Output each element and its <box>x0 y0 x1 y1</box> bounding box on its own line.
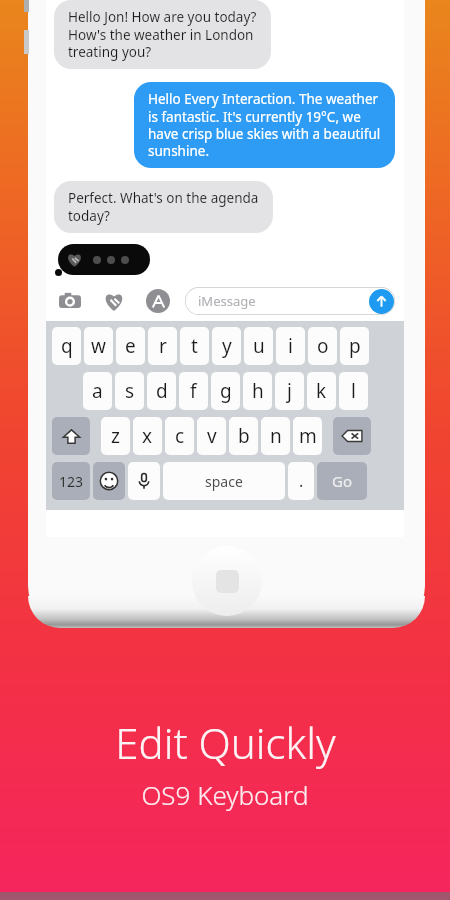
staticText: a <box>92 378 103 404</box>
button[interactable]: j <box>275 372 304 410</box>
button[interactable]: q <box>52 327 81 365</box>
button[interactable]: c <box>165 417 194 455</box>
staticText: p <box>349 333 361 359</box>
staticText: OS9 Keyboard <box>141 777 309 812</box>
button[interactable]: space <box>163 462 285 500</box>
staticText: n <box>270 423 282 449</box>
staticText: x <box>142 423 153 449</box>
staticText: q <box>61 333 73 359</box>
button[interactable]: y <box>212 327 241 365</box>
staticText: Hello Every Interaction. The weather is … <box>148 90 381 160</box>
staticText: z <box>111 423 120 449</box>
staticText: r <box>159 333 167 359</box>
button[interactable]: Home <box>192 546 262 616</box>
button[interactable]: l <box>339 372 368 410</box>
button[interactable]: i <box>276 327 305 365</box>
button[interactable]: iMessage <box>185 287 395 315</box>
staticText: iMessage <box>198 292 256 310</box>
staticText: v <box>207 423 217 449</box>
staticText: h <box>252 378 264 404</box>
staticText: f <box>190 378 197 404</box>
button[interactable]: r <box>148 327 177 365</box>
button[interactable]: . <box>288 462 314 500</box>
button[interactable]: a <box>83 372 112 410</box>
staticText: t <box>191 333 198 359</box>
button[interactable]: m <box>293 417 322 455</box>
staticText: m <box>299 423 317 449</box>
button[interactable]: Hello Jon! How are you today? How's the … <box>54 0 271 69</box>
button[interactable]: Shift <box>52 417 90 455</box>
staticText: u <box>253 333 265 359</box>
staticText: d <box>156 378 168 404</box>
staticText: s <box>125 378 135 404</box>
staticText: e <box>125 333 136 359</box>
button[interactable]: Camera <box>55 286 85 316</box>
button[interactable]: o <box>308 327 337 365</box>
staticText: g <box>220 378 232 404</box>
button[interactable]: Send <box>369 289 394 314</box>
button[interactable]: Dictation <box>128 462 160 500</box>
button[interactable]: f <box>179 372 208 410</box>
staticText: 123 <box>59 472 84 491</box>
staticText: Go <box>332 471 352 491</box>
button[interactable]: s <box>115 372 144 410</box>
button[interactable]: Go <box>317 462 367 500</box>
staticText: k <box>316 378 327 404</box>
button[interactable]: e <box>116 327 145 365</box>
button[interactable]: Backspace <box>333 417 371 455</box>
button[interactable]: u <box>244 327 273 365</box>
staticText: Perfect. What's on the agenda today? <box>68 189 259 225</box>
staticText: i <box>288 333 293 359</box>
button[interactable]: Digital Touch <box>99 286 129 316</box>
button[interactable]: Emoji <box>93 462 125 500</box>
staticText: w <box>91 333 106 359</box>
button[interactable]: p <box>340 327 369 365</box>
button[interactable]: w <box>84 327 113 365</box>
staticText: space <box>205 472 243 491</box>
button[interactable]: App Store <box>143 286 173 316</box>
button[interactable]: Perfect. What's on the agenda today? <box>54 181 273 233</box>
staticText: Edit Quickly <box>115 714 336 771</box>
staticText: . <box>299 470 304 492</box>
staticText: j <box>287 378 292 404</box>
button[interactable]: t <box>180 327 209 365</box>
button[interactable]: z <box>101 417 130 455</box>
button[interactable]: v <box>197 417 226 455</box>
staticText: b <box>238 423 250 449</box>
staticText: c <box>175 423 185 449</box>
button[interactable]: k <box>307 372 336 410</box>
button[interactable]: n <box>261 417 290 455</box>
button[interactable]: b <box>229 417 258 455</box>
staticText: l <box>351 378 356 404</box>
button[interactable]: d <box>147 372 176 410</box>
button[interactable]: g <box>211 372 240 410</box>
button[interactable]: Hello Every Interaction. The weather is … <box>134 82 395 168</box>
button[interactable]: 123 <box>52 462 90 500</box>
button[interactable]: h <box>243 372 272 410</box>
button[interactable]: x <box>133 417 162 455</box>
staticText: Hello Jon! How are you today? How's the … <box>68 8 257 61</box>
staticText: o <box>317 333 329 359</box>
staticText: y <box>222 333 232 359</box>
button[interactable]: Typing <box>58 244 150 275</box>
